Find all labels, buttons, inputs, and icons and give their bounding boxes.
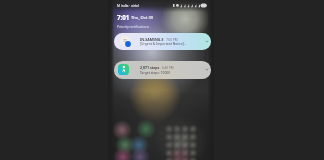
staticText: 6:40 PM [162,66,174,70]
staticText: 7:01 [117,13,130,21]
button[interactable]: 2,871 steps [114,61,211,79]
staticText: M india · airtel [117,3,140,7]
staticText: Priority notifications [117,24,150,29]
button[interactable]: IN-SAMSNG-S [114,33,211,50]
staticText: 2,871 steps [140,65,160,70]
staticText: Target steps: 10000 [140,70,171,74]
staticText: Thu, Oct 30 [131,15,154,21]
button[interactable]: Expand notification [204,39,210,44]
staticText: IN-SAMSNG-S [140,37,164,42]
staticText: 7:00 PM [166,38,178,42]
button[interactable]: Expand notification [204,67,210,72]
staticText: [Urgent & Important Notice]... [140,41,187,45]
